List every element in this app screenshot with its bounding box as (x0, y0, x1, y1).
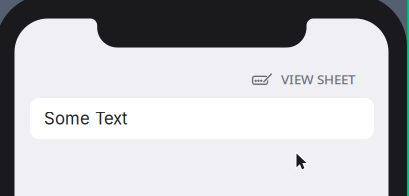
button[interactable]: VIEW SHEET (252, 69, 355, 89)
staticText: Some Text (44, 108, 127, 129)
staticText: VIEW SHEET (281, 70, 355, 88)
